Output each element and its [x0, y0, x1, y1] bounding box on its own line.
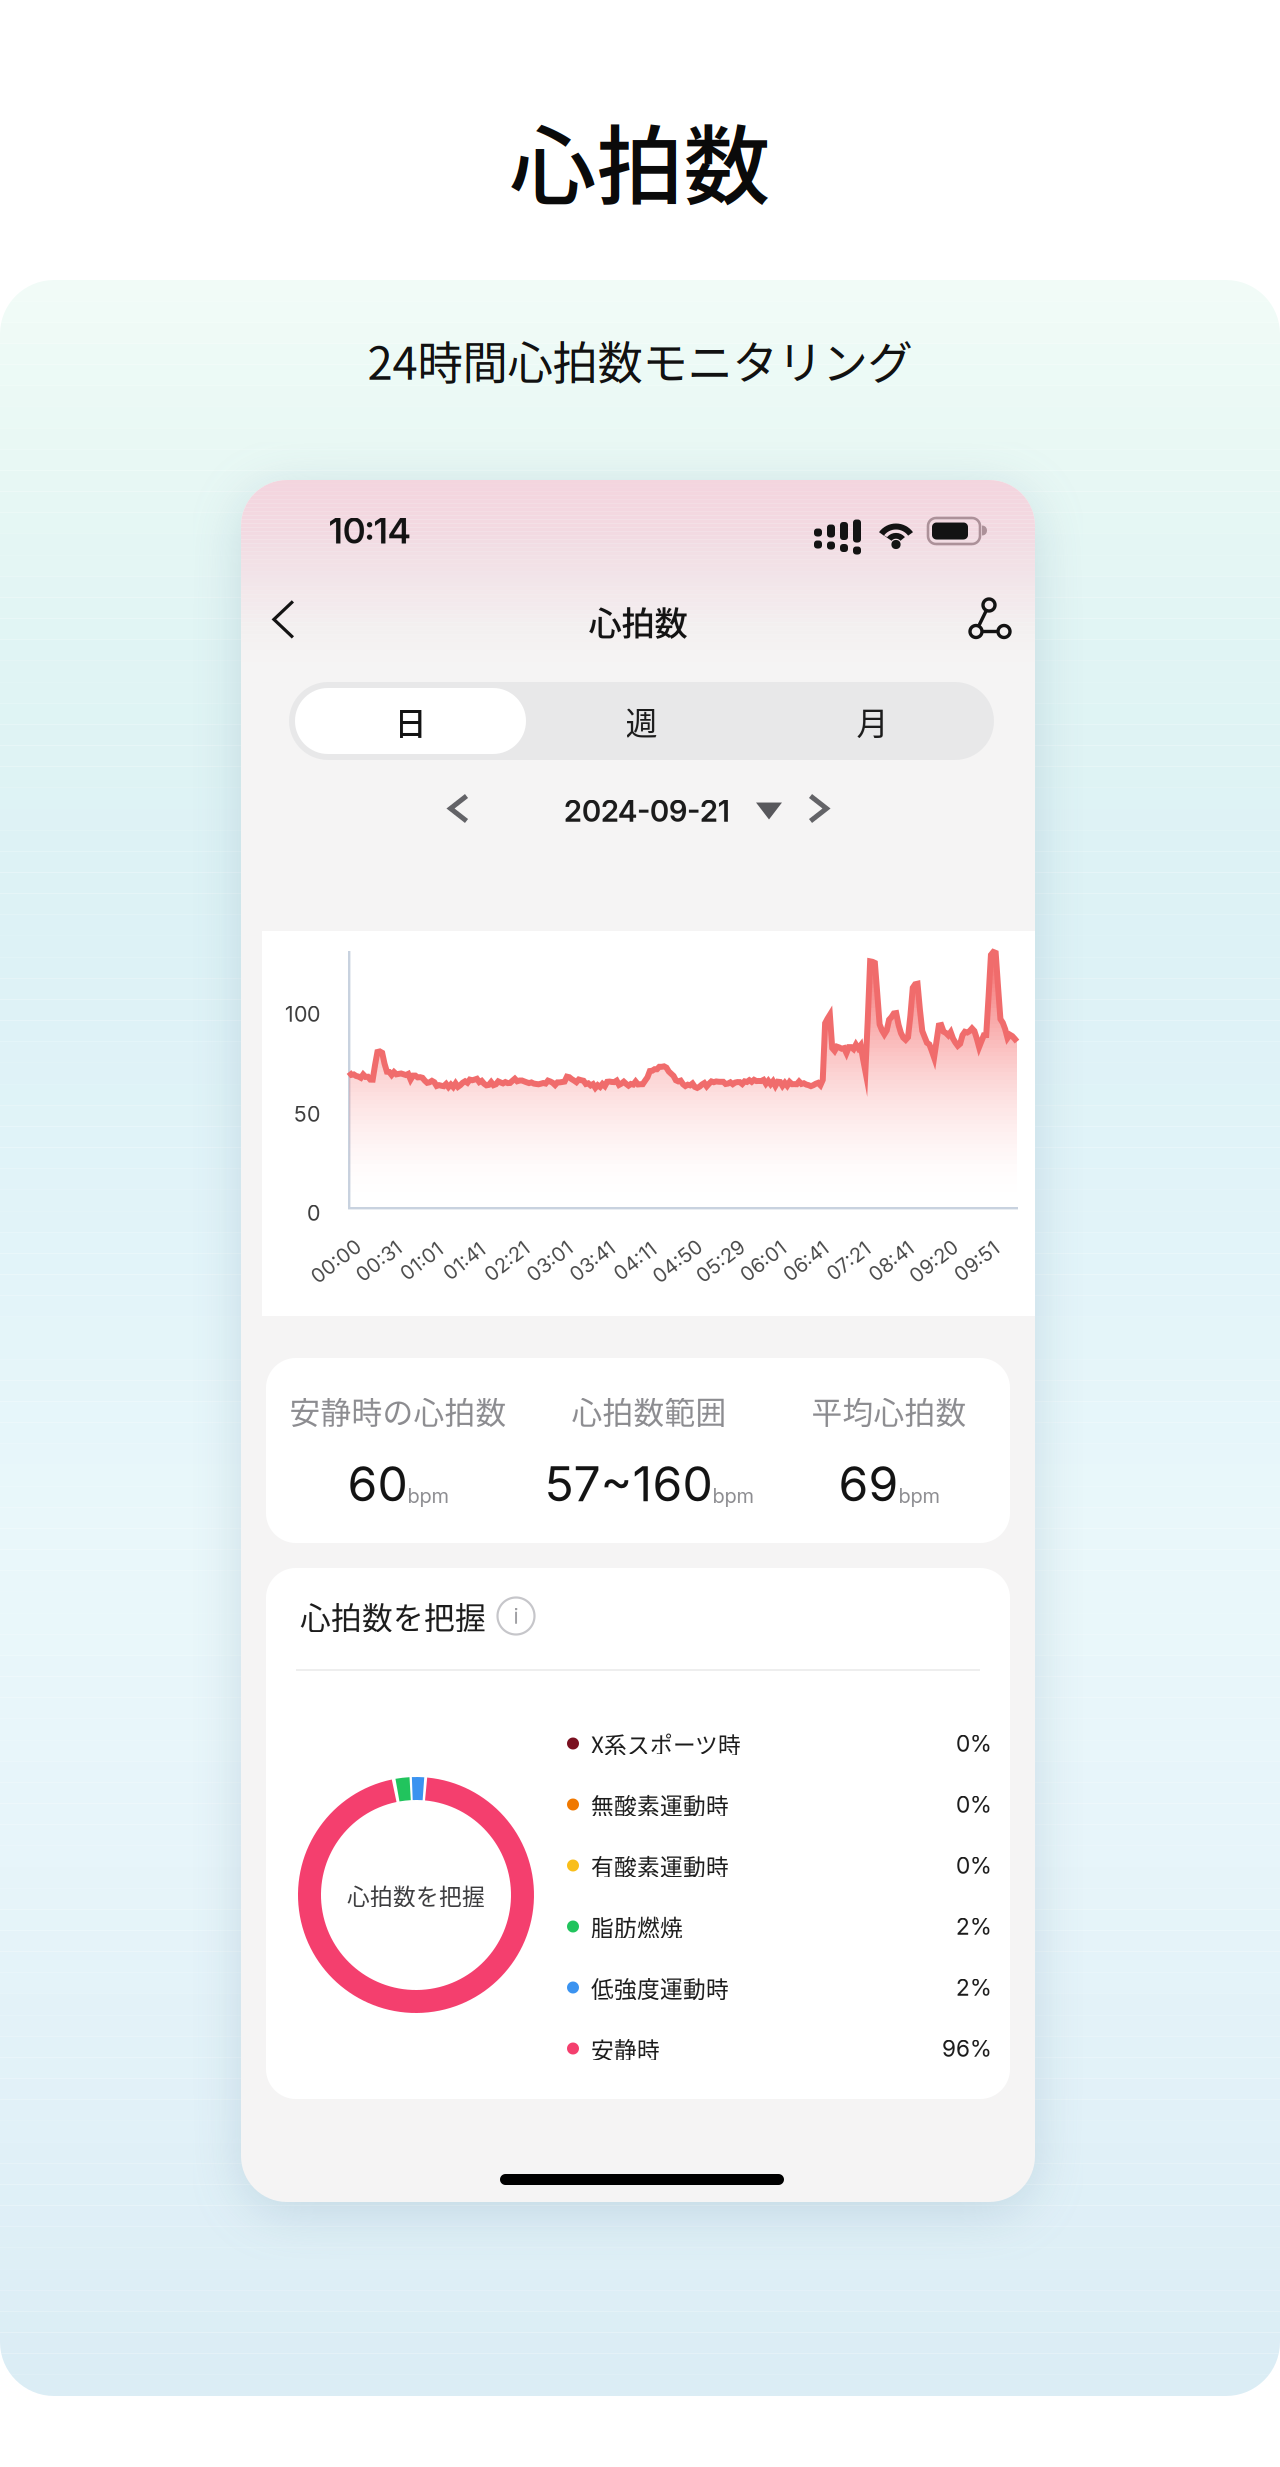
staticText: 24時間心拍数モニタリング: [367, 327, 912, 393]
staticText: 0: [307, 1200, 320, 1226]
staticText: 0%: [956, 1852, 992, 1879]
staticText: 平均心拍数: [811, 1388, 966, 1433]
staticText: 0%: [956, 1791, 992, 1818]
staticText: 08:41: [866, 1249, 917, 1273]
staticText: 有酸素運動時: [591, 1849, 729, 1882]
staticText: i: [513, 1603, 518, 1629]
staticText: 10:14: [329, 510, 411, 552]
staticText: 06:41: [780, 1249, 831, 1273]
staticText: 安静時: [591, 2032, 660, 2065]
staticText: 100: [285, 1001, 320, 1027]
staticText: 02:21: [481, 1249, 532, 1273]
staticText: bpm: [407, 1483, 448, 1508]
staticText: 04:50: [649, 1249, 706, 1273]
staticText: 無酸素運動時: [591, 1788, 729, 1821]
staticText: 心拍数: [588, 597, 687, 645]
staticText: 06:01: [737, 1249, 789, 1273]
staticText: 心拍数を把握: [300, 1594, 486, 1638]
staticText: 01:01: [397, 1249, 445, 1273]
staticText: 週: [625, 698, 657, 744]
staticText: 96%: [942, 2035, 992, 2062]
button[interactable]: 日付を選ぶ: [744, 786, 794, 836]
staticText: 低強度運動時: [591, 1971, 729, 2004]
staticText: 脂肪燃焼: [591, 1910, 683, 1943]
staticText: 00:00: [307, 1249, 365, 1273]
staticText: 57~160: [544, 1455, 712, 1513]
staticText: 月: [856, 698, 888, 744]
staticText: 60: [347, 1455, 407, 1513]
staticText: 心拍数を把握: [347, 1879, 485, 1911]
staticText: 09:20: [906, 1249, 962, 1273]
staticText: 00:31: [353, 1249, 405, 1273]
staticText: 03:01: [523, 1249, 575, 1273]
staticText: 04:11: [611, 1249, 659, 1273]
staticText: 07:21: [824, 1249, 873, 1273]
staticText: 2%: [956, 1913, 992, 1940]
staticText: 日: [394, 698, 426, 744]
staticText: 安静時の心拍数: [289, 1388, 506, 1433]
staticText: 心拍数: [509, 97, 770, 223]
button[interactable]: 前の日: [434, 784, 488, 838]
staticText: 50: [294, 1101, 320, 1127]
staticText: bpm: [712, 1483, 753, 1508]
button[interactable]: 月: [757, 688, 988, 754]
staticText: 2%: [956, 1974, 992, 2001]
button[interactable]: 詳細情報: [491, 1591, 541, 1641]
staticText: 0%: [956, 1730, 992, 1757]
staticText: X系スポーツ時: [591, 1727, 741, 1760]
button[interactable]: 週: [526, 688, 757, 754]
staticText: 2024-09-21: [564, 793, 730, 829]
button[interactable]: 共有: [949, 583, 1025, 659]
button[interactable]: 日: [295, 688, 526, 754]
staticText: bpm: [898, 1483, 939, 1508]
staticText: 03:41: [567, 1249, 618, 1273]
staticText: 09:51: [951, 1249, 1002, 1273]
staticText: 69: [838, 1455, 898, 1513]
button[interactable]: 次の日: [794, 784, 848, 838]
staticText: 01:41: [441, 1249, 488, 1273]
staticText: 心拍数範囲: [571, 1388, 726, 1433]
button[interactable]: 戻る: [247, 583, 323, 659]
staticText: 05:29: [693, 1249, 748, 1273]
